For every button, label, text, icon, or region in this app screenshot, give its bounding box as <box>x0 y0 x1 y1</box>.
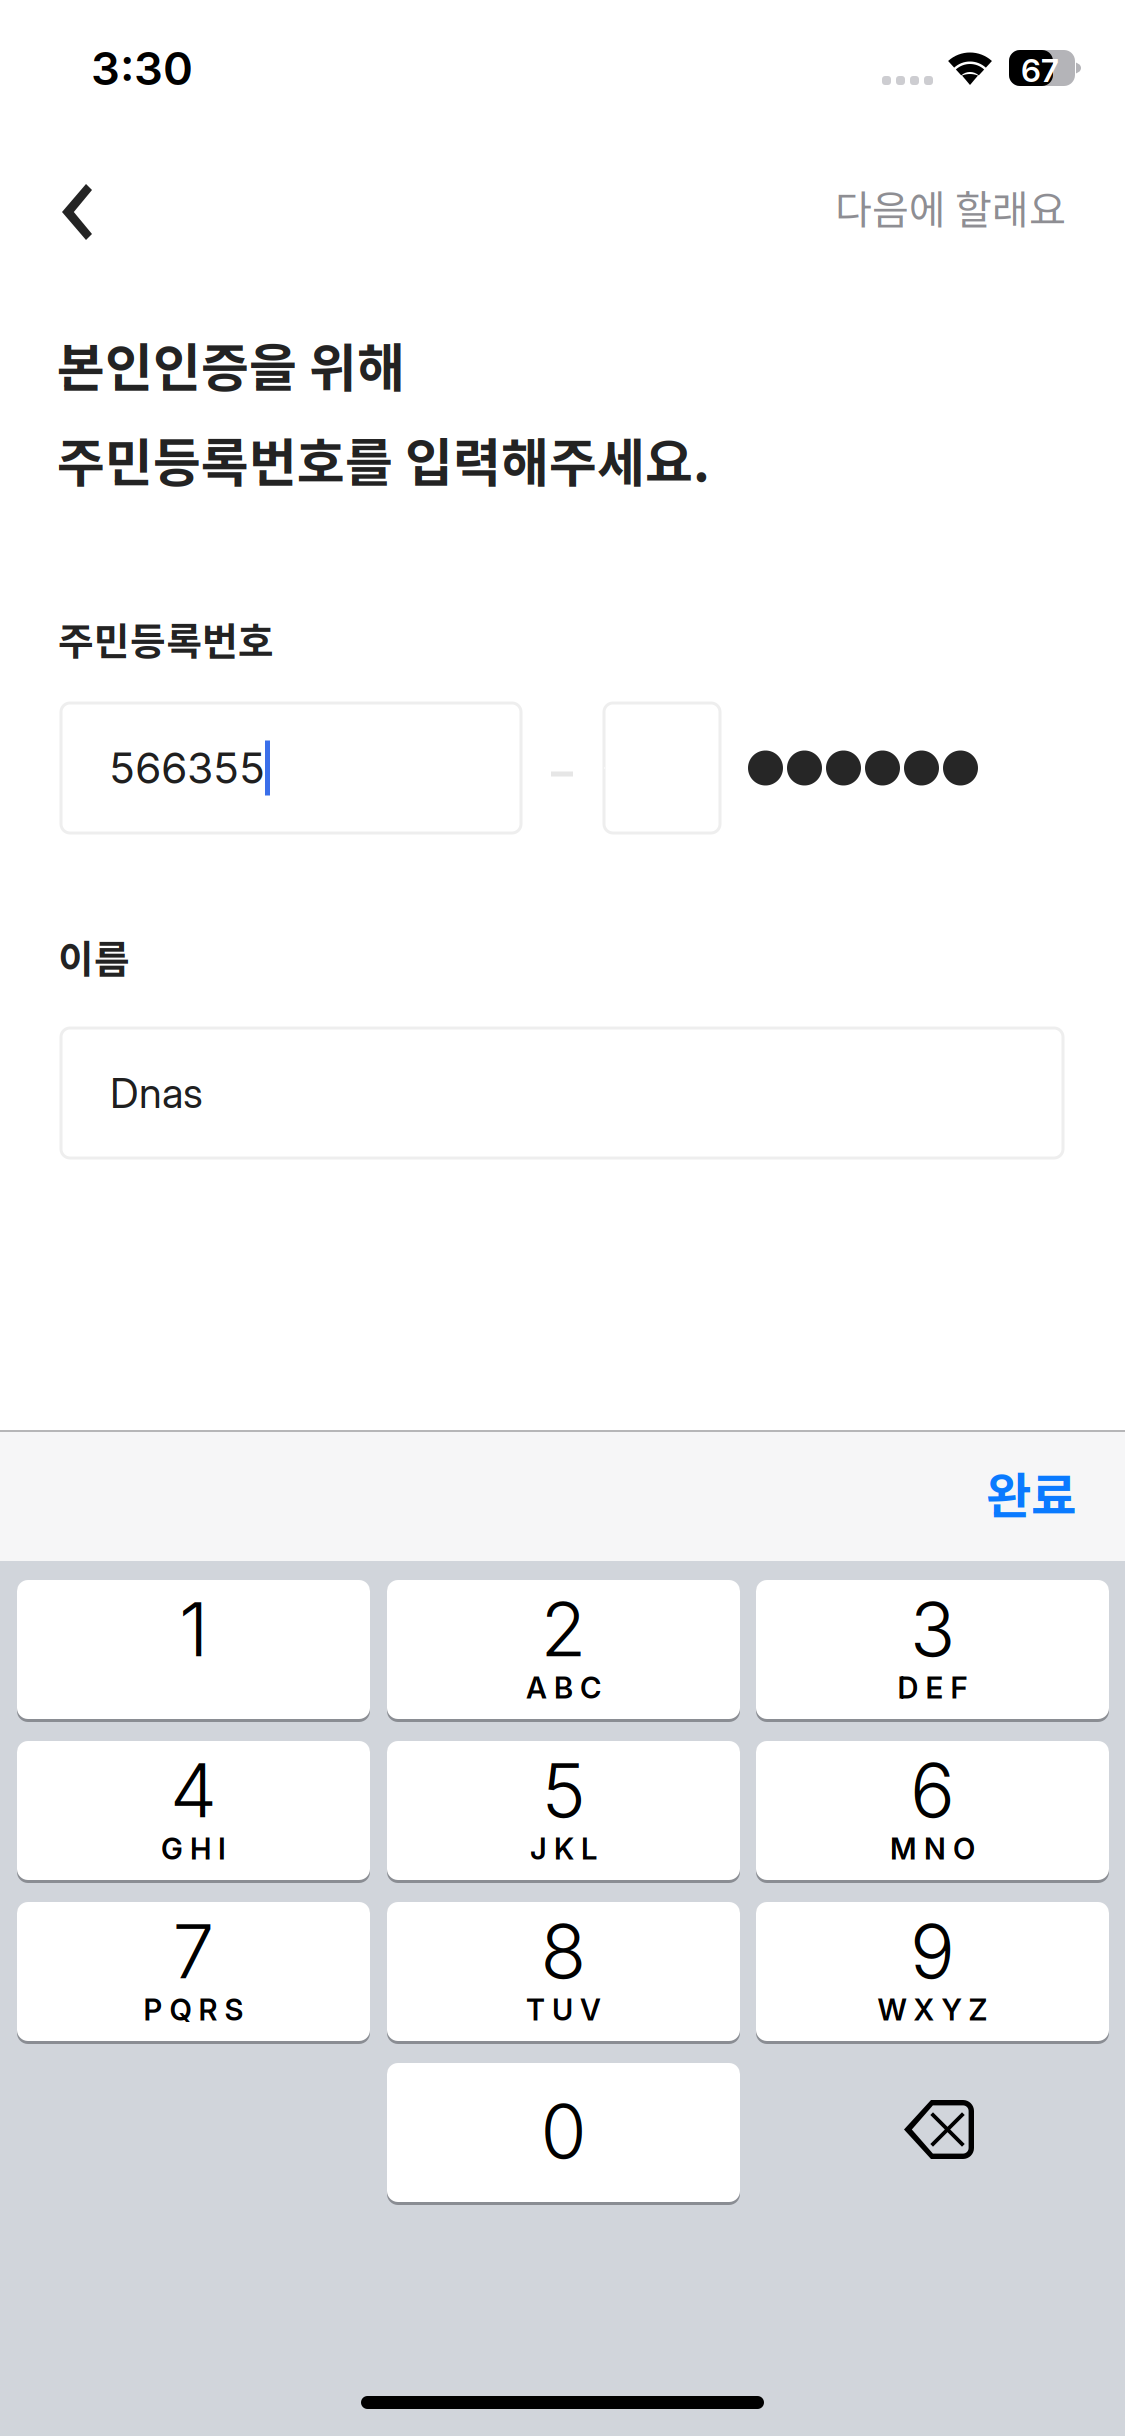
staticText: 주민등록번호를 입력해주세요. <box>57 421 710 497</box>
button[interactable]: 완료 <box>986 1432 1125 1561</box>
button[interactable]: 1 <box>17 1580 370 1722</box>
staticText: 다음에 할래요 <box>835 178 1066 236</box>
staticText: 3 <box>910 1584 955 1674</box>
button[interactable]: 다음에 할래요 <box>835 147 1125 267</box>
button[interactable]: 566355 <box>61 703 521 833</box>
button[interactable]: 6 <box>756 1741 1109 1883</box>
button[interactable]: 5 <box>387 1741 740 1883</box>
button[interactable]: 0 <box>387 2063 740 2205</box>
button[interactable]: 4 <box>17 1741 370 1883</box>
staticText: Dnas <box>110 1068 203 1118</box>
button[interactable]: 8 <box>387 1902 740 2044</box>
staticText: T U V <box>526 1992 601 2027</box>
staticText: J K L <box>530 1831 597 1866</box>
button[interactable]: Dnas <box>61 1028 1063 1158</box>
staticText: 이름 <box>58 929 130 985</box>
button[interactable]: 3 <box>756 1580 1109 1722</box>
staticText: 완료 <box>986 1457 1076 1528</box>
staticText: 본인인증을 위해 <box>57 326 405 402</box>
staticText: 주민등록번호 <box>58 611 274 667</box>
button[interactable]: 2 <box>387 1580 740 1722</box>
staticText: P Q R S <box>143 1992 243 2027</box>
staticText: 566355 <box>109 742 265 794</box>
button[interactable]: 주민등록번호 뒷자리 <box>604 703 720 833</box>
button[interactable]: 7 <box>17 1902 370 2044</box>
staticText: G H I <box>161 1831 226 1866</box>
staticText: 0 <box>540 2086 586 2176</box>
staticText: 5 <box>541 1745 585 1835</box>
staticText: 9 <box>910 1906 955 1996</box>
staticText: M N O <box>890 1831 975 1866</box>
button[interactable]: Delete <box>756 2063 1109 2205</box>
button[interactable]: 9 <box>756 1902 1109 2044</box>
staticText: 3:30 <box>91 41 193 96</box>
staticText: D E F <box>897 1670 967 1705</box>
staticText: W X Y Z <box>877 1992 987 2027</box>
staticText: 2 <box>540 1584 586 1674</box>
staticText: 6 <box>910 1745 955 1835</box>
staticText: 4 <box>170 1745 217 1835</box>
staticText: 67 <box>1021 51 1059 90</box>
staticText: A B C <box>526 1670 601 1705</box>
staticText: 8 <box>540 1906 586 1996</box>
button[interactable]: Back <box>2 152 152 272</box>
staticText: 7 <box>172 1906 214 1996</box>
staticText: 1 <box>179 1584 208 1674</box>
